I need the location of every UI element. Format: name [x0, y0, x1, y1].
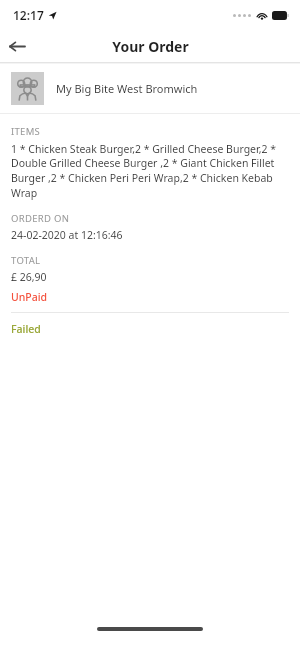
staticText: 24-02-2020 at 12:16:46 [11, 228, 123, 242]
staticText: UnPaid [11, 290, 48, 304]
staticText: 1 * Chicken Steak Burger,2 * Grilled Che… [11, 142, 289, 200]
staticText: Your Order [112, 37, 189, 56]
staticText: TOTAL [11, 254, 41, 267]
button[interactable]: Back [0, 30, 34, 62]
staticText: £ 26,90 [11, 270, 47, 284]
button[interactable]: My Big Bite West Bromwich [0, 64, 300, 113]
staticText: ORDERD ON [11, 212, 70, 225]
staticText: My Big Bite West Bromwich [56, 81, 198, 96]
staticText: Failed [11, 322, 41, 336]
staticText: 12:17 [13, 7, 44, 23]
staticText: ITEMS [11, 125, 41, 138]
